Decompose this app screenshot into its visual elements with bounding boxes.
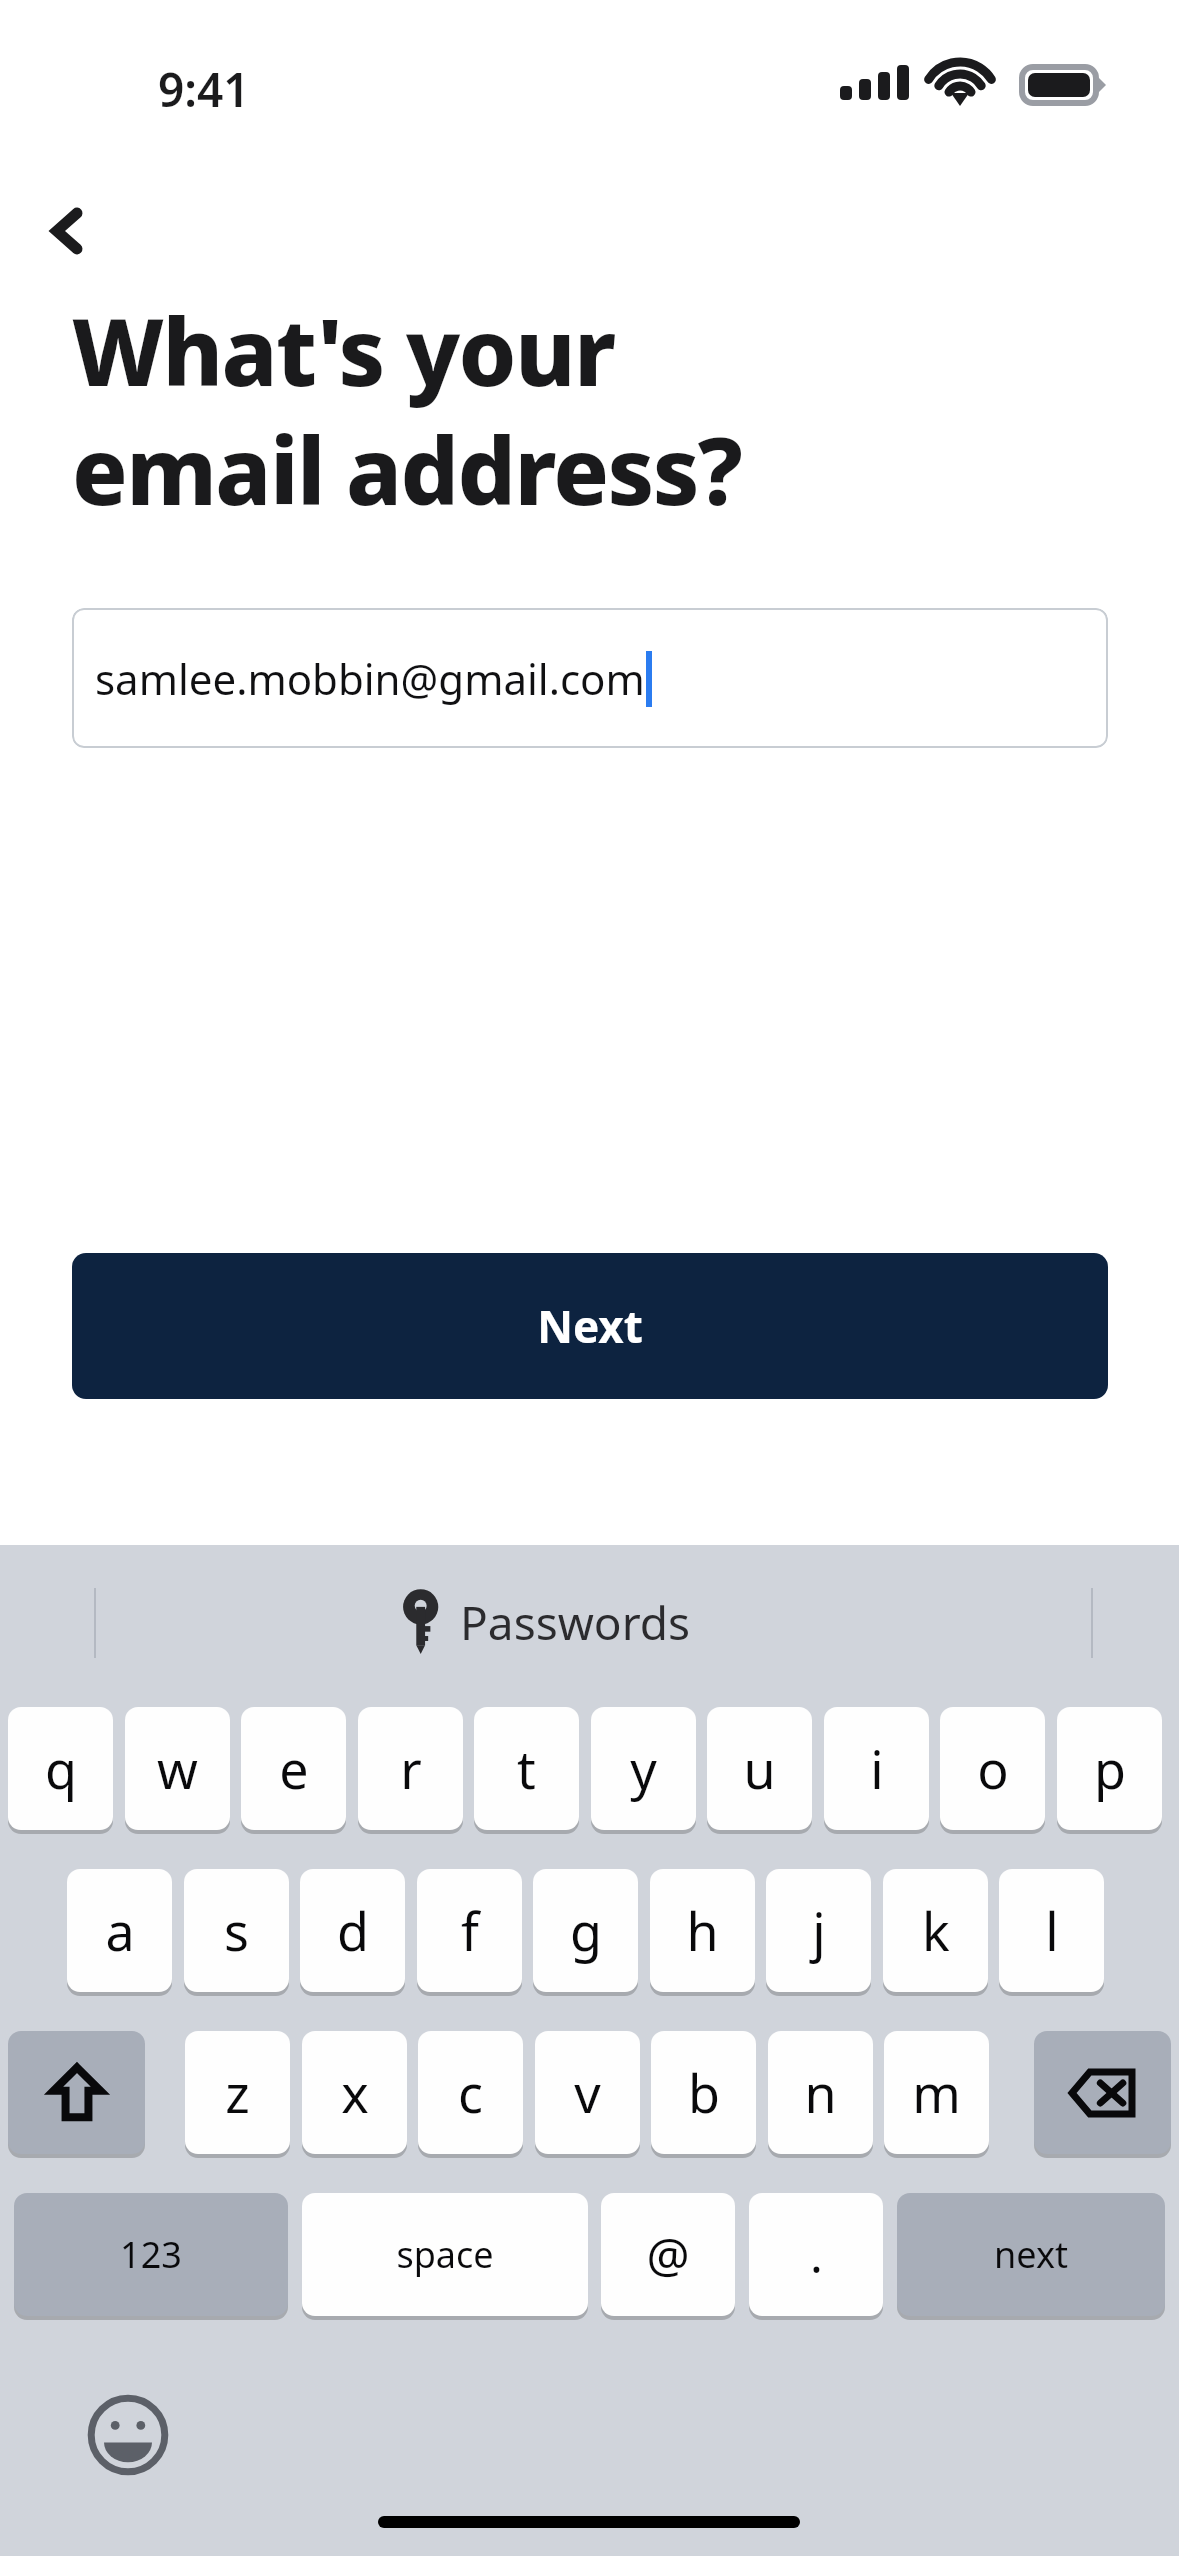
button[interactable]: a (67, 1869, 172, 1992)
staticText: z (225, 2057, 250, 2128)
button[interactable]: Emoji keyboard (74, 2381, 182, 2489)
staticText: b (688, 2057, 720, 2128)
staticText: . (810, 2222, 823, 2287)
button[interactable]: z (185, 2031, 290, 2154)
button[interactable]: c (418, 2031, 523, 2154)
button[interactable]: Back (12, 175, 124, 287)
button[interactable]: next (897, 2193, 1165, 2316)
button[interactable]: x (302, 2031, 407, 2154)
staticText: f (461, 1895, 479, 1966)
button[interactable]: q (8, 1707, 113, 1830)
button[interactable]: Backspace (1034, 2031, 1171, 2154)
button[interactable]: t (474, 1707, 579, 1830)
button[interactable]: r (358, 1707, 463, 1830)
staticText: 9:41 (158, 58, 250, 118)
button[interactable]: f (417, 1869, 522, 1992)
staticText: What's your email address? (72, 288, 742, 532)
button[interactable]: . (749, 2193, 883, 2316)
staticText: w (157, 1733, 198, 1804)
button[interactable]: space (302, 2193, 588, 2316)
staticText: h (686, 1895, 719, 1966)
staticText: Passwords (460, 1591, 691, 1654)
staticText: next (994, 2230, 1068, 2279)
staticText: o (977, 1733, 1009, 1804)
button[interactable]: Next (72, 1253, 1108, 1399)
button[interactable]: s (184, 1869, 289, 1992)
staticText: e (279, 1733, 309, 1804)
staticText: a (105, 1895, 135, 1966)
button[interactable]: 123 (14, 2193, 288, 2316)
button[interactable]: d (300, 1869, 405, 1992)
button[interactable]: l (999, 1869, 1104, 1992)
staticText: y (630, 1733, 657, 1804)
button[interactable]: h (650, 1869, 755, 1992)
staticText: g (570, 1895, 602, 1966)
button[interactable]: i (824, 1707, 929, 1830)
staticText: k (922, 1895, 950, 1966)
staticText: s (224, 1895, 249, 1966)
button[interactable]: samlee.mobbin@gmail.com (72, 608, 1108, 748)
button[interactable]: @ (601, 2193, 735, 2316)
button[interactable]: o (940, 1707, 1045, 1830)
button[interactable]: k (883, 1869, 988, 1992)
button[interactable]: n (768, 2031, 873, 2154)
button[interactable]: Shift (8, 2031, 145, 2154)
button[interactable]: j (766, 1869, 871, 1992)
staticText: i (870, 1733, 884, 1804)
button[interactable]: p (1057, 1707, 1162, 1830)
button[interactable]: b (651, 2031, 756, 2154)
staticText: u (743, 1733, 776, 1804)
button[interactable]: v (535, 2031, 640, 2154)
staticText: v (574, 2057, 601, 2128)
button[interactable]: w (125, 1707, 230, 1830)
staticText: p (1094, 1733, 1126, 1804)
staticText: @ (646, 2222, 690, 2287)
staticText: Next (537, 1296, 643, 1356)
button[interactable]: e (241, 1707, 346, 1830)
staticText: q (45, 1733, 77, 1804)
staticText: space (396, 2230, 494, 2279)
staticText: m (912, 2057, 961, 2128)
button[interactable]: u (707, 1707, 812, 1830)
button[interactable]: m (884, 2031, 989, 2154)
staticText: x (341, 2057, 369, 2128)
staticText: samlee.mobbin@gmail.com (95, 650, 645, 707)
staticText: c (458, 2057, 483, 2128)
staticText: r (400, 1733, 422, 1804)
staticText: n (804, 2057, 837, 2128)
staticText: t (517, 1733, 536, 1804)
button[interactable]: g (533, 1869, 638, 1992)
button[interactable]: Passwords (400, 1572, 780, 1672)
staticText: l (1045, 1895, 1059, 1966)
staticText: j (812, 1895, 826, 1966)
staticText: 123 (120, 2230, 182, 2279)
button[interactable]: y (591, 1707, 696, 1830)
staticText: d (337, 1895, 369, 1966)
